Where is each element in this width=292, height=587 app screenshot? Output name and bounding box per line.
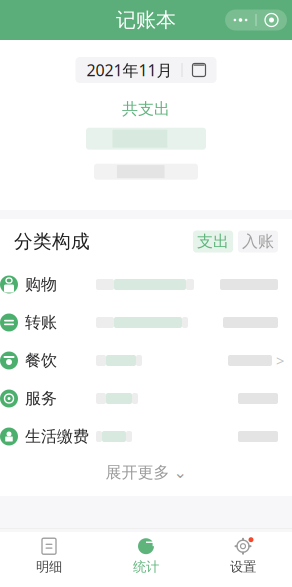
button[interactable]: 餐饮 bbox=[0, 341, 292, 379]
button[interactable]: 入账 bbox=[238, 230, 278, 252]
button[interactable]: 支出 bbox=[193, 230, 233, 252]
button[interactable]: 统计 bbox=[97, 529, 194, 583]
staticText: 生活缴费 bbox=[25, 427, 89, 446]
button[interactable]: 展开更多 bbox=[0, 455, 292, 489]
staticText: 入账 bbox=[242, 232, 274, 251]
button[interactable]: 转账 bbox=[0, 303, 292, 341]
staticText: 服务 bbox=[25, 389, 57, 408]
button[interactable]: 2021年11月 bbox=[75, 57, 216, 83]
staticText: 分类构成 bbox=[14, 230, 90, 253]
button[interactable]: More and close bbox=[225, 9, 287, 30]
button[interactable]: 设置 bbox=[194, 529, 291, 583]
staticText: 展开更多 bbox=[105, 463, 169, 482]
staticText: 共支出 bbox=[122, 99, 170, 119]
staticText: 支出 bbox=[197, 232, 229, 251]
button[interactable]: 明细 bbox=[0, 529, 97, 583]
staticText: > bbox=[276, 351, 284, 370]
staticText: ⌄ bbox=[173, 463, 186, 482]
staticText: 设置 bbox=[230, 559, 256, 575]
button[interactable]: 生活缴费 bbox=[0, 417, 292, 455]
button[interactable]: 购物 bbox=[0, 265, 292, 303]
staticText: 记账本 bbox=[116, 8, 176, 32]
staticText: 明细 bbox=[36, 559, 62, 575]
staticText: 2021年11月 bbox=[86, 59, 172, 81]
staticText: 购物 bbox=[25, 275, 57, 294]
button[interactable]: 服务 bbox=[0, 379, 292, 417]
staticText: 统计 bbox=[133, 559, 159, 575]
staticText: 转账 bbox=[25, 313, 57, 332]
staticText: 餐饮 bbox=[25, 351, 57, 370]
